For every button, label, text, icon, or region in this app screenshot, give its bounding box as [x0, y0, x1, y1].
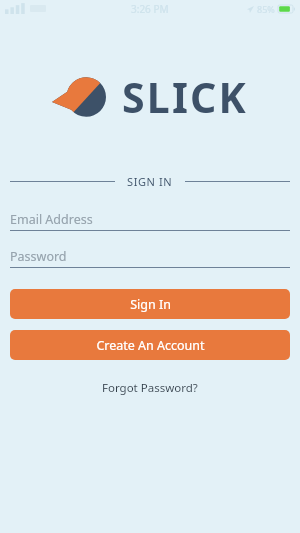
- button[interactable]: Email Address: [10, 209, 290, 231]
- button[interactable]: Sign In: [10, 289, 290, 319]
- staticText: Sign In: [130, 296, 171, 313]
- staticText: Password: [10, 248, 67, 265]
- button[interactable]: Password: [10, 246, 290, 268]
- staticText: Forgot Password?: [102, 380, 198, 396]
- staticText: Create An Account: [96, 337, 205, 354]
- staticText: Email Address: [10, 211, 93, 228]
- staticText: SLICK: [122, 69, 249, 125]
- staticText: 85%: [257, 3, 275, 15]
- button[interactable]: Create An Account: [10, 330, 290, 360]
- staticText: SIGN IN: [127, 174, 173, 188]
- staticText: 3:26 PM: [131, 2, 169, 16]
- button[interactable]: Forgot Password?: [92, 376, 208, 400]
